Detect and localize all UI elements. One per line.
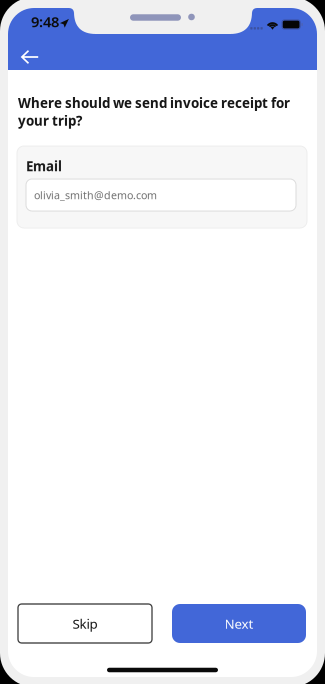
staticText: Email <box>26 157 62 175</box>
staticText: Next <box>224 615 253 632</box>
staticText: 9:48 <box>31 12 59 31</box>
staticText: olivia_smith@demo.com <box>34 188 157 202</box>
button[interactable]: Back <box>8 40 52 74</box>
button[interactable]: Skip <box>18 604 152 643</box>
staticText: Skip <box>72 615 97 632</box>
staticText: Where should we send invoice receipt for… <box>18 94 290 129</box>
button[interactable]: Next <box>172 604 306 643</box>
